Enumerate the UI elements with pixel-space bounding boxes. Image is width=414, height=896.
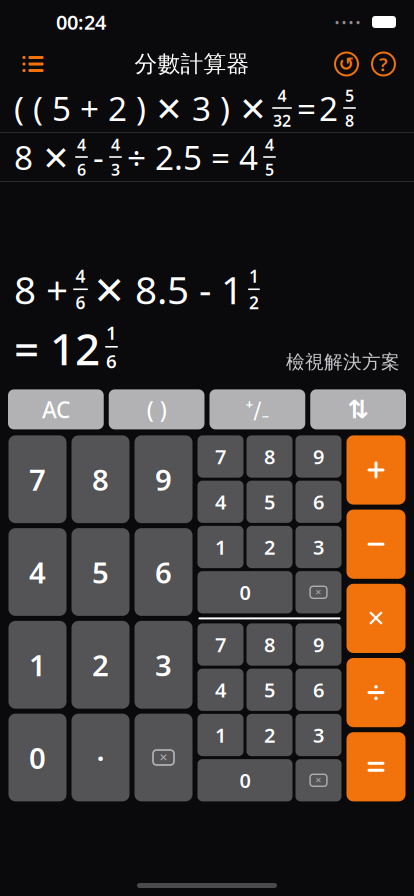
staticText: 9 [313,631,324,658]
staticText: 8 [264,631,275,658]
button[interactable]: 4 [197,669,243,711]
staticText: = 12 [14,319,100,377]
staticText: 32 [273,110,291,131]
button[interactable]: 9 [295,623,341,666]
staticText: 6 [155,552,172,591]
staticText: 0 [239,767,250,794]
button[interactable]: 1 [8,621,66,709]
button[interactable]: ( ( 5 + 2 ) ✕ 3 ) ✕ [0,84,414,132]
staticText: 8 + [14,264,68,315]
staticText: 4 [77,134,86,155]
button[interactable]: Swap [310,389,406,429]
staticText: - [93,135,104,179]
button[interactable]: Equals [346,732,405,801]
staticText: 5 [92,552,109,591]
staticText: 4 [29,552,46,591]
staticText: 3 [313,722,324,748]
button[interactable]: 4 [8,528,66,616]
button[interactable]: Plus [346,435,405,505]
staticText: 7 [29,460,46,499]
button[interactable]: Delete [295,571,341,613]
button[interactable]: 5 [71,528,129,616]
button[interactable]: History [328,50,365,77]
staticText: ⁺∕₋ [245,394,269,424]
button[interactable]: 7 [197,435,243,478]
staticText: 4 [215,676,226,703]
button[interactable]: ( ) [109,389,205,429]
staticText: 檢視解決方案 [286,350,400,373]
staticText: 9 [313,443,324,470]
staticText: 7 [215,631,226,658]
staticText: 0 [29,738,46,777]
staticText: 00:24 [56,9,106,35]
button[interactable]: Help [365,50,402,77]
staticText: 6 [313,488,324,515]
button[interactable]: 3 [295,714,341,756]
staticText: 6 [313,676,324,703]
button[interactable]: 檢視解決方案 [286,350,400,377]
staticText: 6 [75,291,85,314]
button[interactable]: Minus [346,510,405,579]
button[interactable]: 2 [71,621,129,709]
button[interactable]: 3 [134,621,192,709]
button[interactable]: Multiply [346,584,405,653]
staticText: 3 [155,645,172,684]
staticText: AC [42,394,70,424]
staticText: ✕ [315,588,322,597]
staticText: ✕ [315,776,322,785]
staticText: 1 [249,264,259,287]
button[interactable]: AC [8,389,104,429]
staticText: = [297,86,316,130]
button[interactable]: 6 [295,669,341,711]
button[interactable]: 8 ✕ [0,133,414,181]
button[interactable]: Divide [346,658,405,727]
staticText: ✕ [366,605,385,631]
staticText: 8 ✕ [14,135,70,179]
staticText: 4 [111,134,120,155]
button[interactable]: 5 [246,669,292,711]
button[interactable]: 2 [246,526,292,568]
button[interactable]: Delete [134,714,192,801]
button[interactable]: 0 [197,759,292,801]
staticText: 5 [264,676,275,703]
button[interactable]: 0 [8,714,66,801]
button[interactable]: 7 [197,623,243,666]
button[interactable]: · [71,714,129,801]
button[interactable]: 6 [295,481,341,523]
button[interactable]: 9 [134,435,192,523]
staticText: 8 [92,460,109,499]
button[interactable]: 2 [246,714,292,756]
staticText: 2 [264,534,275,560]
staticText: • • • • [335,15,360,29]
button[interactable]: 8 [246,435,292,478]
staticText: ✕ [159,751,168,764]
button[interactable]: 6 [134,528,192,616]
staticText: 8 [264,443,275,470]
staticText: 5 [265,159,274,180]
staticText: 4 [277,85,286,106]
staticText: 5 [345,85,354,106]
button[interactable]: 1 [197,714,243,756]
button[interactable]: 5 [246,481,292,523]
staticText: 0 [239,579,250,606]
button[interactable]: Menu [10,47,56,81]
staticText: 4 [265,134,274,155]
button[interactable]: ⁺∕₋ [209,389,305,429]
button[interactable]: 3 [295,526,341,568]
staticText: 1 [215,534,226,560]
button[interactable]: 1 [197,526,243,568]
button[interactable]: Delete [295,759,341,801]
button[interactable]: 8 [246,623,292,666]
button[interactable]: 9 [295,435,341,478]
staticText: ÷ 2.5 = 4 [127,135,258,179]
button[interactable]: 0 [197,571,292,613]
staticText: 分數計算器 [134,50,249,78]
staticText: 9 [155,460,172,499]
staticText: ? [379,52,388,76]
button[interactable]: 4 [197,481,243,523]
staticText: · [96,738,104,777]
staticText: ↺ [338,53,354,75]
button[interactable]: 8 [71,435,129,523]
button[interactable]: 7 [8,435,66,523]
staticText: ⇅ [348,395,369,424]
